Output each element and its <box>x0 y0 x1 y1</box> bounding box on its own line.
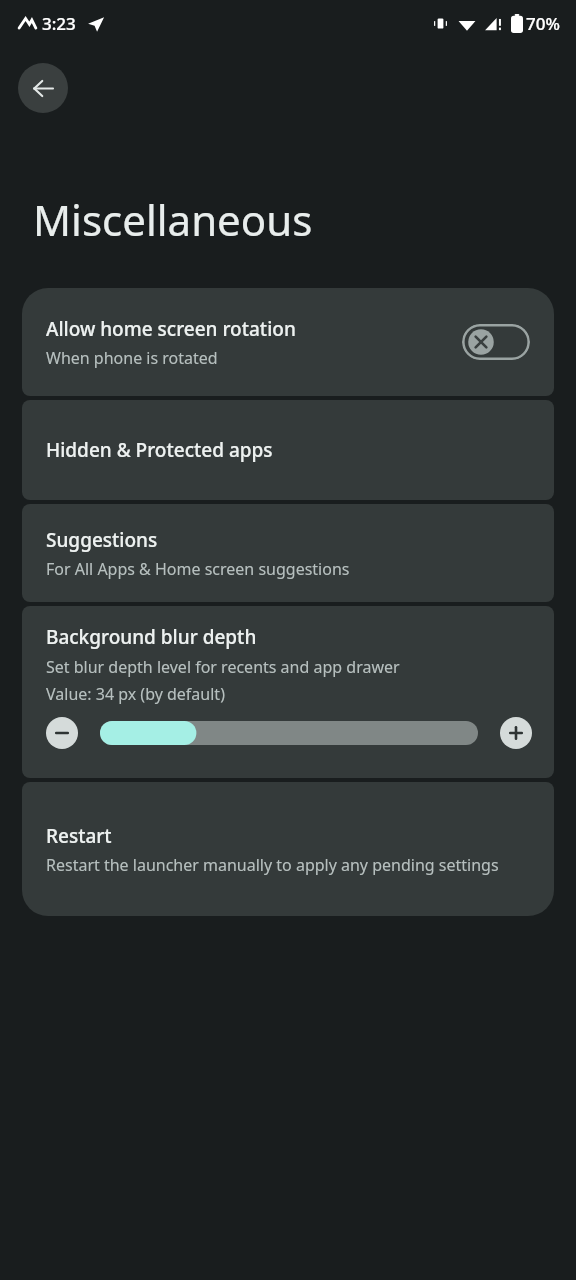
staticText: Value: 34 px (by default) <box>46 683 225 705</box>
button[interactable]: Suggestions <box>22 504 554 602</box>
staticText: Allow home screen rotation <box>46 316 296 342</box>
button[interactable]: Restart <box>22 782 554 916</box>
staticText: Miscellaneous <box>33 191 313 248</box>
staticText: Restart the launcher manually to apply a… <box>46 854 499 876</box>
staticText: Suggestions <box>46 527 158 553</box>
button[interactable]: Allow home screen rotation <box>22 288 554 396</box>
staticText: When phone is rotated <box>46 347 218 369</box>
staticText: Set blur depth level for recents and app… <box>46 656 400 678</box>
staticText: 3:23 <box>42 12 76 35</box>
staticText: Hidden & Protected apps <box>46 437 273 463</box>
staticText: 70% <box>526 12 560 35</box>
button[interactable]: Hidden & Protected apps <box>22 400 554 500</box>
button[interactable]: Allow home screen rotation toggle <box>462 324 530 360</box>
button[interactable]: Decrease blur depth <box>46 717 78 749</box>
staticText: Restart <box>46 823 112 849</box>
staticText: Background blur depth <box>46 624 257 650</box>
button[interactable]: Increase blur depth <box>500 717 532 749</box>
staticText: For All Apps & Home screen suggestions <box>46 558 350 580</box>
button[interactable]: Back <box>18 63 68 113</box>
